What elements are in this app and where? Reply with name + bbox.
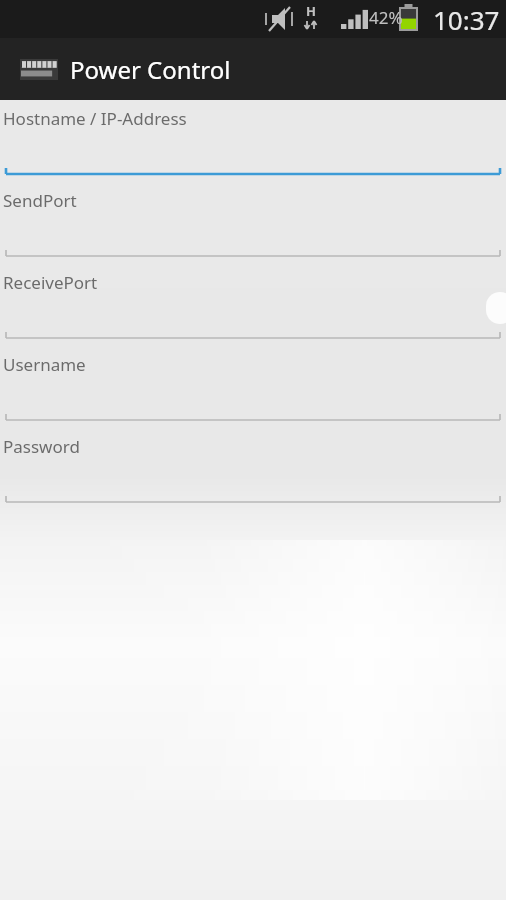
staticText: ReceivePort (3, 271, 98, 294)
staticText: Username (3, 353, 86, 376)
button[interactable]: SendPort (0, 188, 506, 260)
button[interactable]: Username (0, 352, 506, 424)
other: App logo (20, 59, 58, 80)
staticText: 42% (369, 6, 403, 29)
staticText: SendPort (3, 189, 77, 212)
staticText: Password (3, 435, 80, 458)
staticText: H (306, 2, 316, 20)
button[interactable]: ReceivePort (0, 270, 506, 342)
button[interactable]: Hostname / IP-Address (0, 106, 506, 178)
staticText: 10:37 (433, 2, 500, 37)
staticText: Hostname / IP-Address (3, 107, 187, 130)
staticText: Power Control (70, 53, 231, 86)
button[interactable]: Password (0, 434, 506, 506)
button[interactable]: App logo (0, 38, 506, 100)
